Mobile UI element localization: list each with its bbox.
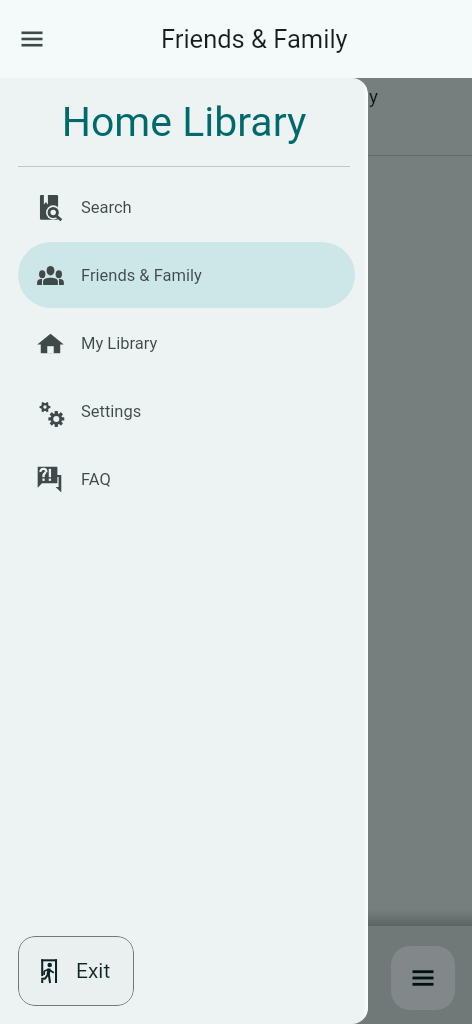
staticText: Home Library [0, 98, 368, 146]
staticText: Exit [76, 959, 111, 984]
button[interactable]: Friends & Family [18, 242, 355, 308]
staticText: Friends & Family [161, 24, 348, 54]
button[interactable]: Exit [18, 936, 134, 1006]
button[interactable]: Search [18, 174, 355, 240]
button[interactable]: Menu [391, 946, 455, 1010]
staticText: Friends & Family [239, 85, 379, 107]
staticText: Friends & Family [81, 266, 202, 285]
button[interactable]: My Library [18, 310, 355, 376]
button[interactable]: FAQ [18, 446, 355, 512]
staticText: Settings [81, 402, 142, 421]
button[interactable]: Open navigation drawer [8, 15, 56, 63]
staticText: Search [81, 198, 132, 217]
staticText: My Library [81, 334, 158, 353]
staticText: FAQ [81, 470, 111, 489]
button[interactable]: Settings [18, 378, 355, 444]
